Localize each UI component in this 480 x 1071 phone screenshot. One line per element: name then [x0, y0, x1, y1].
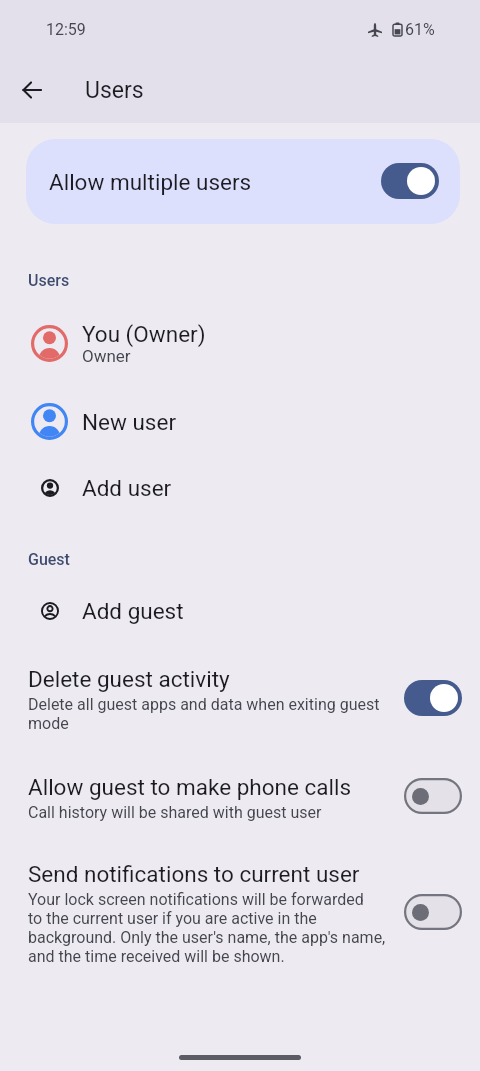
staticText: 12:59: [46, 20, 86, 39]
staticText: Add user: [82, 475, 172, 501]
button[interactable]: You (Owner): [0, 310, 480, 377]
button[interactable]: Allow multiple users: [26, 139, 460, 224]
button[interactable]: Delete guest activity: [0, 652, 480, 747]
button[interactable]: Back: [8, 66, 56, 114]
staticText: Owner: [82, 346, 131, 366]
staticText: 61%: [405, 20, 435, 39]
staticText: Allow guest to make phone calls: [28, 774, 352, 800]
staticText: You (Owner): [82, 321, 206, 347]
staticText: Delete all guest apps and data when exit…: [28, 695, 380, 733]
staticText: Your lock screen notifications will be f…: [28, 890, 386, 966]
staticText: New user: [82, 409, 177, 435]
staticText: Users: [28, 271, 70, 290]
staticText: Call history will be shared with guest u…: [28, 803, 322, 822]
button[interactable]: Allow guest to make phone calls: [0, 759, 480, 835]
button[interactable]: New user: [0, 388, 480, 455]
staticText: Guest: [28, 550, 70, 569]
staticText: Users: [85, 77, 144, 104]
button[interactable]: Send notifications to current user: [0, 847, 480, 980]
staticText: Send notifications to current user: [28, 861, 360, 887]
staticText: Delete guest activity: [28, 666, 230, 692]
staticText: Allow multiple users: [49, 169, 252, 195]
button[interactable]: Add user: [0, 454, 480, 521]
button[interactable]: Add guest: [0, 577, 480, 644]
staticText: Add guest: [82, 598, 184, 624]
